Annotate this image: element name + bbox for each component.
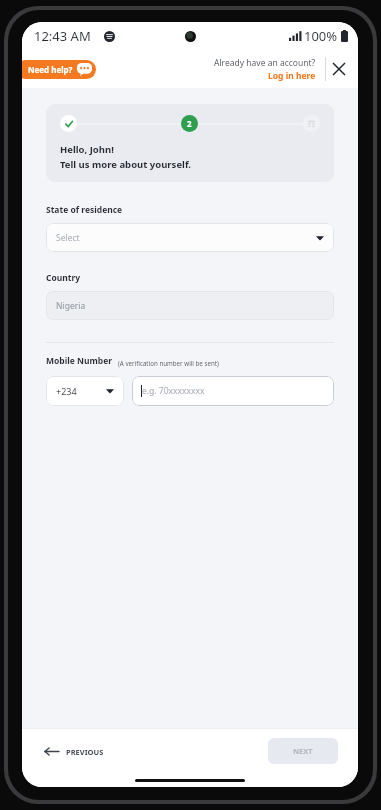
staticText: Mobile Number xyxy=(46,355,113,367)
button[interactable]: +234 xyxy=(46,376,124,406)
button[interactable]: PREVIOUS xyxy=(42,740,106,763)
staticText: Hello, John! xyxy=(60,143,114,156)
staticText: Nigeria xyxy=(56,300,86,312)
staticText: Tell us more about yourself. xyxy=(60,158,192,171)
staticText: PREVIOUS xyxy=(66,747,104,757)
staticText: (A verification number will be sent) xyxy=(118,359,219,367)
staticText: +234 xyxy=(56,385,77,397)
staticText: NEXT xyxy=(293,746,313,756)
staticText: Already have an account? xyxy=(214,57,316,69)
staticText: Log in here xyxy=(268,70,316,82)
button[interactable]: Already have an account? xyxy=(212,57,318,82)
button[interactable]: Select xyxy=(46,223,334,252)
staticText: 2 xyxy=(187,118,192,129)
staticText: Select xyxy=(56,232,80,244)
staticText: Country xyxy=(46,272,81,284)
button[interactable]: Nigeria xyxy=(46,291,334,320)
staticText: Need help? xyxy=(28,64,73,75)
button[interactable]: Close xyxy=(326,56,352,82)
button[interactable]: e.g. 70xxxxxxxx xyxy=(132,376,334,406)
button[interactable]: Need help? xyxy=(22,60,96,79)
staticText: e.g. 70xxxxxxxx xyxy=(142,385,205,397)
staticText: 100% xyxy=(304,27,338,45)
button[interactable]: NEXT xyxy=(268,738,338,764)
staticText: State of residence xyxy=(46,204,123,216)
staticText: 12:43 AM xyxy=(34,27,91,45)
